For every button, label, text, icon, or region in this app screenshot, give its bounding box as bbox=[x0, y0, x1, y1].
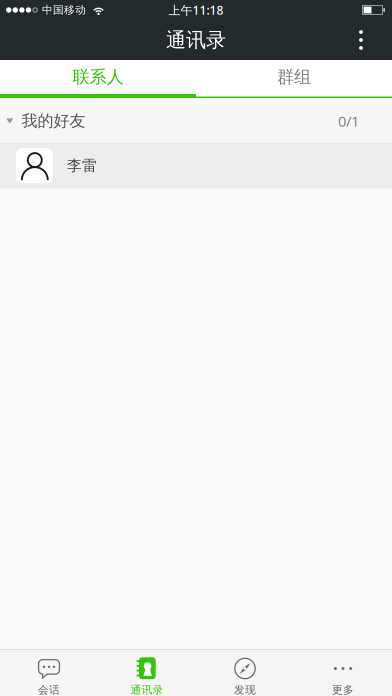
button[interactable]: 我的好友 bbox=[0, 99, 392, 143]
staticText: 通讯录 bbox=[130, 683, 163, 696]
staticText: 会话 bbox=[38, 683, 60, 696]
staticText: 通讯录 bbox=[166, 28, 226, 52]
staticText: 李雷 bbox=[67, 157, 97, 175]
button[interactable]: 群组 bbox=[196, 60, 392, 94]
staticText: 更多 bbox=[332, 683, 354, 696]
button[interactable]: 发现 bbox=[196, 649, 294, 696]
staticText: 群组 bbox=[277, 66, 311, 88]
button[interactable]: 联系人 bbox=[0, 60, 196, 94]
button[interactable]: 李雷 bbox=[0, 144, 392, 188]
staticText: 0/1 bbox=[338, 111, 359, 131]
button[interactable]: 会话 bbox=[0, 649, 98, 696]
staticText: 上午11:18 bbox=[168, 2, 223, 18]
button[interactable]: 更多 bbox=[294, 649, 392, 696]
staticText: 联系人 bbox=[72, 66, 123, 88]
button[interactable]: 通讯录 bbox=[98, 649, 196, 696]
staticText: 中国移动 bbox=[42, 3, 86, 16]
button[interactable]: More options bbox=[339, 20, 383, 60]
staticText: 我的好友 bbox=[21, 111, 85, 131]
staticText: 发现 bbox=[234, 683, 256, 696]
